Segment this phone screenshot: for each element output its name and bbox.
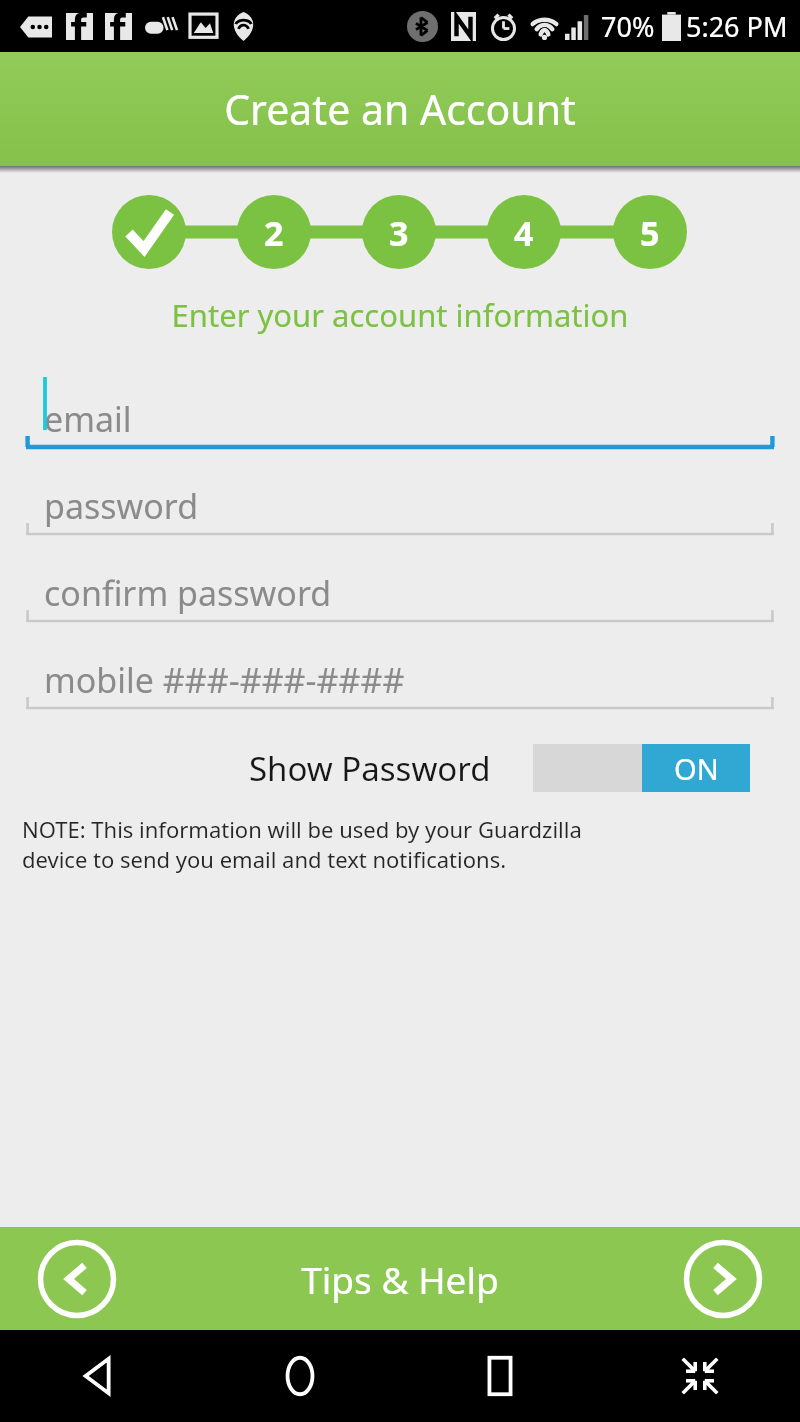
button[interactable]: Tips & Help: [0, 1254, 800, 1304]
staticText: email: [44, 396, 132, 442]
button[interactable]: confirm password: [26, 556, 774, 643]
staticText: confirm password: [44, 570, 332, 616]
staticText: 2: [264, 210, 284, 254]
staticText: Create an Account: [224, 81, 576, 137]
button[interactable]: mobile ###-###-####: [26, 643, 774, 730]
button[interactable]: email: [26, 382, 774, 469]
button[interactable]: Home: [200, 1330, 400, 1422]
staticText: 4: [514, 210, 534, 254]
button[interactable]: Back: [0, 1330, 200, 1422]
button[interactable]: Next step: [679, 1235, 767, 1323]
staticText: mobile ###-###-####: [44, 657, 405, 703]
button[interactable]: Shrink screen: [600, 1330, 800, 1422]
staticText: Show Password: [249, 746, 491, 791]
staticText: 70%: [601, 8, 655, 45]
staticText: NOTE: This information will be used by y…: [22, 814, 780, 875]
staticText: 5:26 PM: [686, 8, 788, 45]
button[interactable]: password: [26, 469, 774, 556]
staticText: 5: [640, 210, 660, 254]
staticText: ON: [674, 749, 719, 788]
staticText: password: [44, 483, 199, 529]
button[interactable]: Recent apps: [400, 1330, 600, 1422]
staticText: 3: [389, 210, 409, 254]
button[interactable]: Previous step: [33, 1235, 121, 1323]
button[interactable]: Show Password, on: [533, 744, 750, 792]
staticText: Enter your account information: [0, 294, 800, 336]
